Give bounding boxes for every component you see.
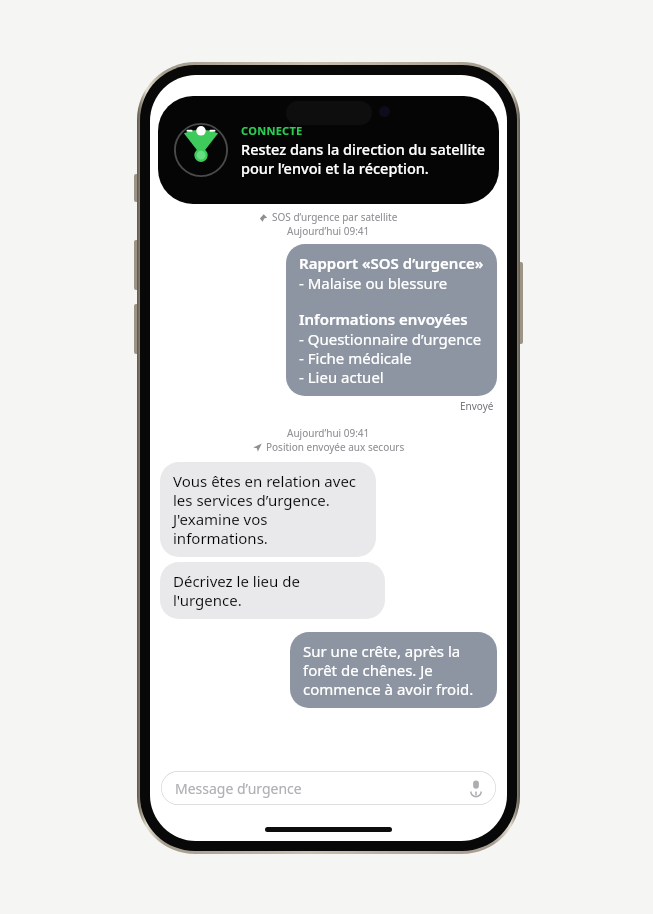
staticText: Décrivez le lieu de l'urgence.	[173, 571, 372, 610]
staticText: Position envoyée aux secours	[266, 440, 405, 454]
staticText: CONNECTE	[241, 123, 303, 138]
staticText: - Questionnaire d’urgence - Fiche médica…	[299, 329, 482, 387]
staticText: Sur une crête, après la forêt de chênes.…	[303, 641, 484, 699]
button[interactable]: CONNECTE	[158, 96, 499, 204]
staticText: Message d’urgence	[175, 779, 302, 798]
staticText: - Malaise ou blessure	[299, 273, 448, 293]
staticText: Aujourd’hui 09:41	[287, 224, 370, 238]
button[interactable]: Dicter un message	[467, 779, 485, 797]
button[interactable]: Sur une crête, après la forêt de chênes.…	[290, 632, 497, 708]
button[interactable]: Message d’urgence	[161, 771, 496, 805]
button[interactable]: Vous êtes en relation avec les services …	[160, 462, 376, 557]
staticText: Informations envoyées	[299, 309, 468, 329]
staticText: Envoyé	[460, 399, 494, 413]
staticText: SOS d’urgence par satellite	[272, 210, 398, 224]
button[interactable]: Rapport «SOS d’urgence»	[286, 244, 497, 396]
staticText: Restez dans la direction du satellite po…	[241, 139, 487, 178]
staticText: Rapport «SOS d’urgence»	[299, 253, 484, 273]
button[interactable]: Décrivez le lieu de l'urgence.	[160, 562, 385, 619]
staticText: Vous êtes en relation avec les services …	[173, 471, 363, 548]
staticText: Aujourd’hui 09:41	[287, 426, 370, 440]
